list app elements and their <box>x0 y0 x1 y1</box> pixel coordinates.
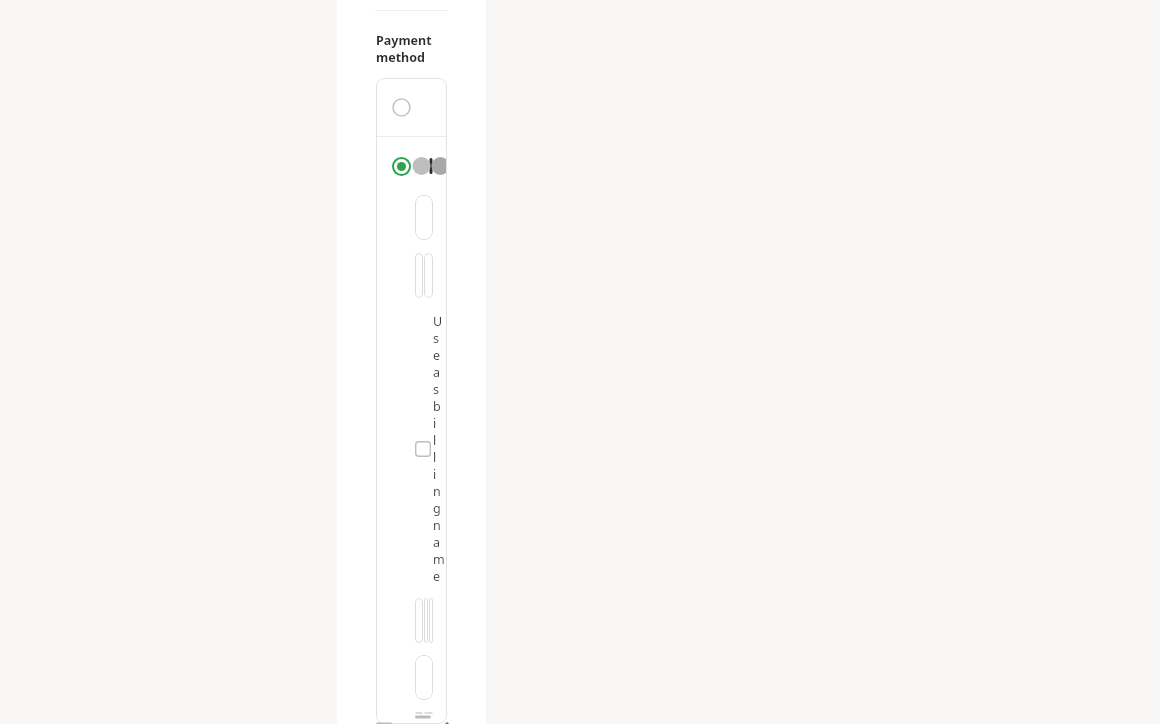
button[interactable]: Name on card <box>415 655 433 700</box>
button[interactable]: MM/YY <box>424 598 428 643</box>
other: Selected <box>392 157 411 176</box>
button[interactable]: Last name <box>424 253 433 298</box>
button[interactable]: First name <box>415 253 423 298</box>
button[interactable]: Card number <box>415 598 423 643</box>
staticText: Payment method <box>376 32 447 66</box>
button[interactable]: Not selected <box>376 78 447 136</box>
button[interactable]: Country <box>415 712 423 714</box>
button[interactable]: Use as billing name <box>415 310 433 588</box>
button[interactable]: Email address <box>415 195 433 240</box>
button[interactable]: CVV <box>429 598 433 643</box>
other: Not selected <box>392 98 411 117</box>
button[interactable]: Selected <box>376 137 447 195</box>
button[interactable]: Postal code <box>424 712 433 714</box>
